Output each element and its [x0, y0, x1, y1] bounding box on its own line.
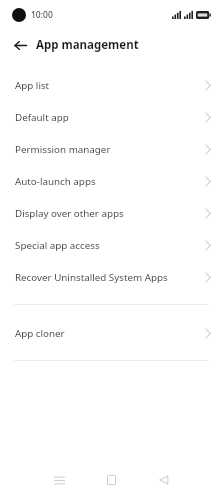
staticText: Auto-launch apps — [15, 175, 96, 188]
button[interactable]: Special app access — [0, 229, 223, 261]
staticText: App cloner — [15, 327, 65, 340]
staticText: Special app access — [15, 239, 100, 252]
staticText: Permission manager — [15, 143, 111, 156]
button[interactable]: Auto-launch apps — [0, 165, 223, 197]
staticText: 10:00 — [31, 9, 53, 21]
button[interactable]: App cloner — [0, 317, 223, 349]
button[interactable]: Back — [151, 467, 177, 493]
button[interactable]: Display over other apps — [0, 197, 223, 229]
button[interactable]: Recover Uninstalled System Apps — [0, 261, 223, 293]
staticText: Recover Uninstalled System Apps — [15, 271, 168, 284]
button[interactable]: Home — [98, 467, 124, 493]
staticText: Default app — [15, 111, 69, 124]
button[interactable]: App list — [0, 69, 223, 101]
staticText: App management — [36, 37, 139, 53]
staticText: App list — [15, 79, 50, 92]
staticText: Display over other apps — [15, 207, 124, 220]
button[interactable]: Permission manager — [0, 133, 223, 165]
button[interactable]: Default app — [0, 101, 223, 133]
button[interactable]: Back — [8, 33, 32, 57]
button[interactable]: Recent apps — [46, 467, 72, 493]
